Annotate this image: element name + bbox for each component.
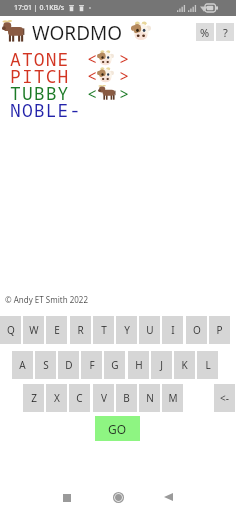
staticText: G xyxy=(111,358,119,372)
staticText: T xyxy=(101,323,107,337)
button[interactable]: O xyxy=(186,316,207,344)
button[interactable]: % xyxy=(196,23,214,41)
staticText: X xyxy=(54,391,60,405)
staticText: ATONE xyxy=(10,47,70,72)
staticText: WORDMO xyxy=(32,20,123,46)
staticText: > xyxy=(119,82,130,105)
staticText: Y xyxy=(124,323,130,337)
button[interactable]: N xyxy=(139,384,160,412)
button[interactable]: U xyxy=(139,316,160,344)
button[interactable]: R xyxy=(70,316,91,344)
button[interactable]: <- xyxy=(214,384,235,412)
staticText: E xyxy=(54,323,60,337)
staticText: O xyxy=(193,323,201,337)
staticText: D xyxy=(65,358,73,372)
staticText: S xyxy=(43,358,49,372)
staticText: © Andy ET Smith 2022 xyxy=(5,294,88,305)
button[interactable]: E xyxy=(46,316,67,344)
staticText: > xyxy=(119,64,130,87)
button[interactable]: C xyxy=(69,384,90,412)
button[interactable]: B xyxy=(116,384,137,412)
staticText: K xyxy=(181,358,188,372)
button[interactable]: I xyxy=(162,316,183,344)
button[interactable]: J xyxy=(151,351,172,379)
button[interactable]: P xyxy=(209,316,230,344)
staticText: H xyxy=(135,358,143,372)
staticText: NOBLE- xyxy=(10,98,82,123)
button[interactable]: ? xyxy=(216,23,234,41)
button[interactable]: GO xyxy=(95,416,140,441)
staticText: U xyxy=(146,323,154,337)
button[interactable]: D xyxy=(58,351,79,379)
staticText: 17:01 | 0.1KB/s xyxy=(14,3,65,13)
staticText: < xyxy=(87,82,98,105)
staticText: N xyxy=(146,391,154,405)
staticText: TUBBY xyxy=(10,81,70,106)
staticText: % xyxy=(200,25,210,40)
staticText: L xyxy=(205,358,211,372)
button[interactable]: X xyxy=(46,384,67,412)
button[interactable]: Home xyxy=(105,484,131,510)
staticText: R xyxy=(77,323,84,337)
staticText: W xyxy=(29,323,39,337)
staticText: < xyxy=(87,47,98,70)
button[interactable]: Y xyxy=(116,316,137,344)
staticText: V xyxy=(101,391,107,405)
staticText: F xyxy=(89,358,95,372)
staticText: PITCH xyxy=(10,64,70,89)
button[interactable]: V xyxy=(93,384,114,412)
button[interactable]: F xyxy=(81,351,102,379)
button[interactable]: Q xyxy=(0,316,21,344)
button[interactable]: L xyxy=(197,351,218,379)
button[interactable]: H xyxy=(128,351,149,379)
button[interactable]: W xyxy=(23,316,44,344)
button[interactable]: Z xyxy=(23,384,44,412)
button[interactable]: Back xyxy=(155,484,181,510)
button[interactable]: G xyxy=(104,351,125,379)
staticText: B xyxy=(123,391,130,405)
button[interactable]: S xyxy=(35,351,56,379)
staticText: M xyxy=(168,391,178,405)
staticText: J xyxy=(160,358,163,372)
staticText: A xyxy=(19,358,26,372)
staticText: GO xyxy=(108,421,127,437)
staticText: < xyxy=(87,64,98,87)
staticText: <- xyxy=(220,391,229,405)
staticText: P xyxy=(216,323,223,337)
staticText: C xyxy=(76,391,83,405)
button[interactable]: M xyxy=(162,384,183,412)
staticText: > xyxy=(119,47,130,70)
staticText: I xyxy=(171,323,175,337)
button[interactable]: K xyxy=(174,351,195,379)
button[interactable]: Recents xyxy=(54,485,80,511)
staticText: Q xyxy=(7,323,15,337)
button[interactable]: A xyxy=(12,351,33,379)
staticText: Z xyxy=(31,391,37,405)
staticText: ? xyxy=(223,25,228,40)
button[interactable]: T xyxy=(93,316,114,344)
